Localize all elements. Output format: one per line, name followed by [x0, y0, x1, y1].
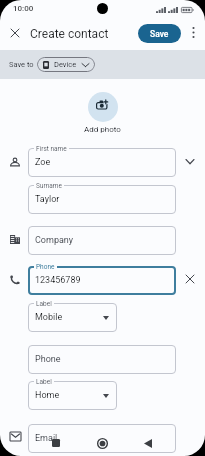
button[interactable]: Recent apps: [44, 431, 68, 455]
staticText: Save: [150, 29, 169, 39]
button[interactable]: [28, 148, 176, 177]
button[interactable]: [28, 424, 176, 453]
staticText: 123456789: [35, 275, 81, 286]
staticText: Device: [54, 60, 77, 69]
staticText: Create contact: [30, 27, 109, 41]
staticText: Email: [35, 433, 58, 444]
button[interactable]: [28, 345, 176, 374]
button[interactable]: [28, 185, 176, 214]
button[interactable]: [28, 226, 176, 255]
button[interactable]: [28, 266, 176, 295]
staticText: Taylor: [35, 194, 60, 205]
button[interactable]: More options: [183, 22, 203, 42]
staticText: Phone: [35, 354, 61, 365]
button[interactable]: [28, 381, 117, 410]
staticText: Mobile: [35, 312, 63, 323]
staticText: Home: [35, 390, 60, 401]
button[interactable]: Clear phone number: [181, 270, 199, 288]
staticText: Phone: [36, 263, 55, 271]
staticText: Company: [35, 235, 74, 246]
button[interactable]: Device: [37, 57, 95, 72]
button[interactable]: Save: [138, 24, 181, 43]
staticText: Zoe: [35, 157, 51, 168]
staticText: 10:00: [13, 4, 34, 13]
button[interactable]: Close: [4, 22, 26, 44]
staticText: Add photo: [84, 125, 121, 134]
button[interactable]: [28, 303, 117, 332]
staticText: First name: [36, 145, 67, 153]
button[interactable]: Home: [90, 431, 114, 455]
button[interactable]: Back: [136, 431, 160, 455]
button[interactable]: Add photo: [88, 92, 118, 122]
staticText: Save to: [9, 60, 34, 69]
staticText: Label: [36, 378, 52, 386]
button[interactable]: Expand name fields: [181, 152, 199, 170]
staticText: Surname: [36, 182, 62, 190]
staticText: Label: [36, 300, 52, 308]
